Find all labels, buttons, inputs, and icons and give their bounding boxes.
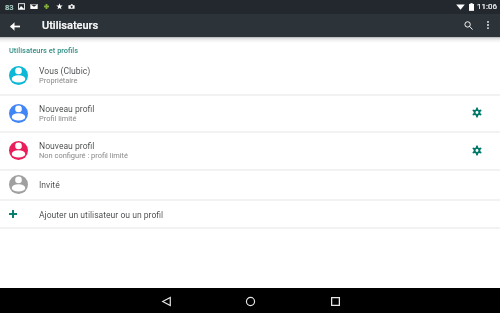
staticText: Ajouter un utilisateur ou un profil [39,210,164,220]
button[interactable]: Settings [465,100,489,124]
button[interactable]: Settings [465,138,489,162]
button[interactable]: Home [240,291,260,311]
button[interactable]: More options [478,16,497,35]
staticText: Nouveau profil [39,141,95,151]
button[interactable]: Ajouter un utilisateur ou un profil [0,200,500,227]
staticText: Invité [39,180,60,190]
button[interactable]: Nouveau profil [0,132,500,169]
staticText: Utilisateurs et profils [9,46,79,55]
button[interactable]: Search [459,16,478,35]
staticText: 83 [5,3,14,12]
staticText: Non configuré : profil limité [39,151,128,160]
button[interactable]: Vous (Clubic) [0,56,500,94]
staticText: 11:06 [477,2,497,11]
button[interactable]: Nouveau profil [0,95,500,131]
button[interactable]: Recents [325,291,345,311]
button[interactable]: Invité [0,170,500,199]
staticText: Utilisateurs [42,19,99,32]
staticText: Vous (Clubic) [39,66,91,76]
staticText: Nouveau profil [39,104,95,114]
button[interactable]: Back [156,291,176,311]
staticText: Profil limité [39,114,77,123]
staticText: Propriétaire [39,76,78,85]
button[interactable]: Back [5,16,25,36]
